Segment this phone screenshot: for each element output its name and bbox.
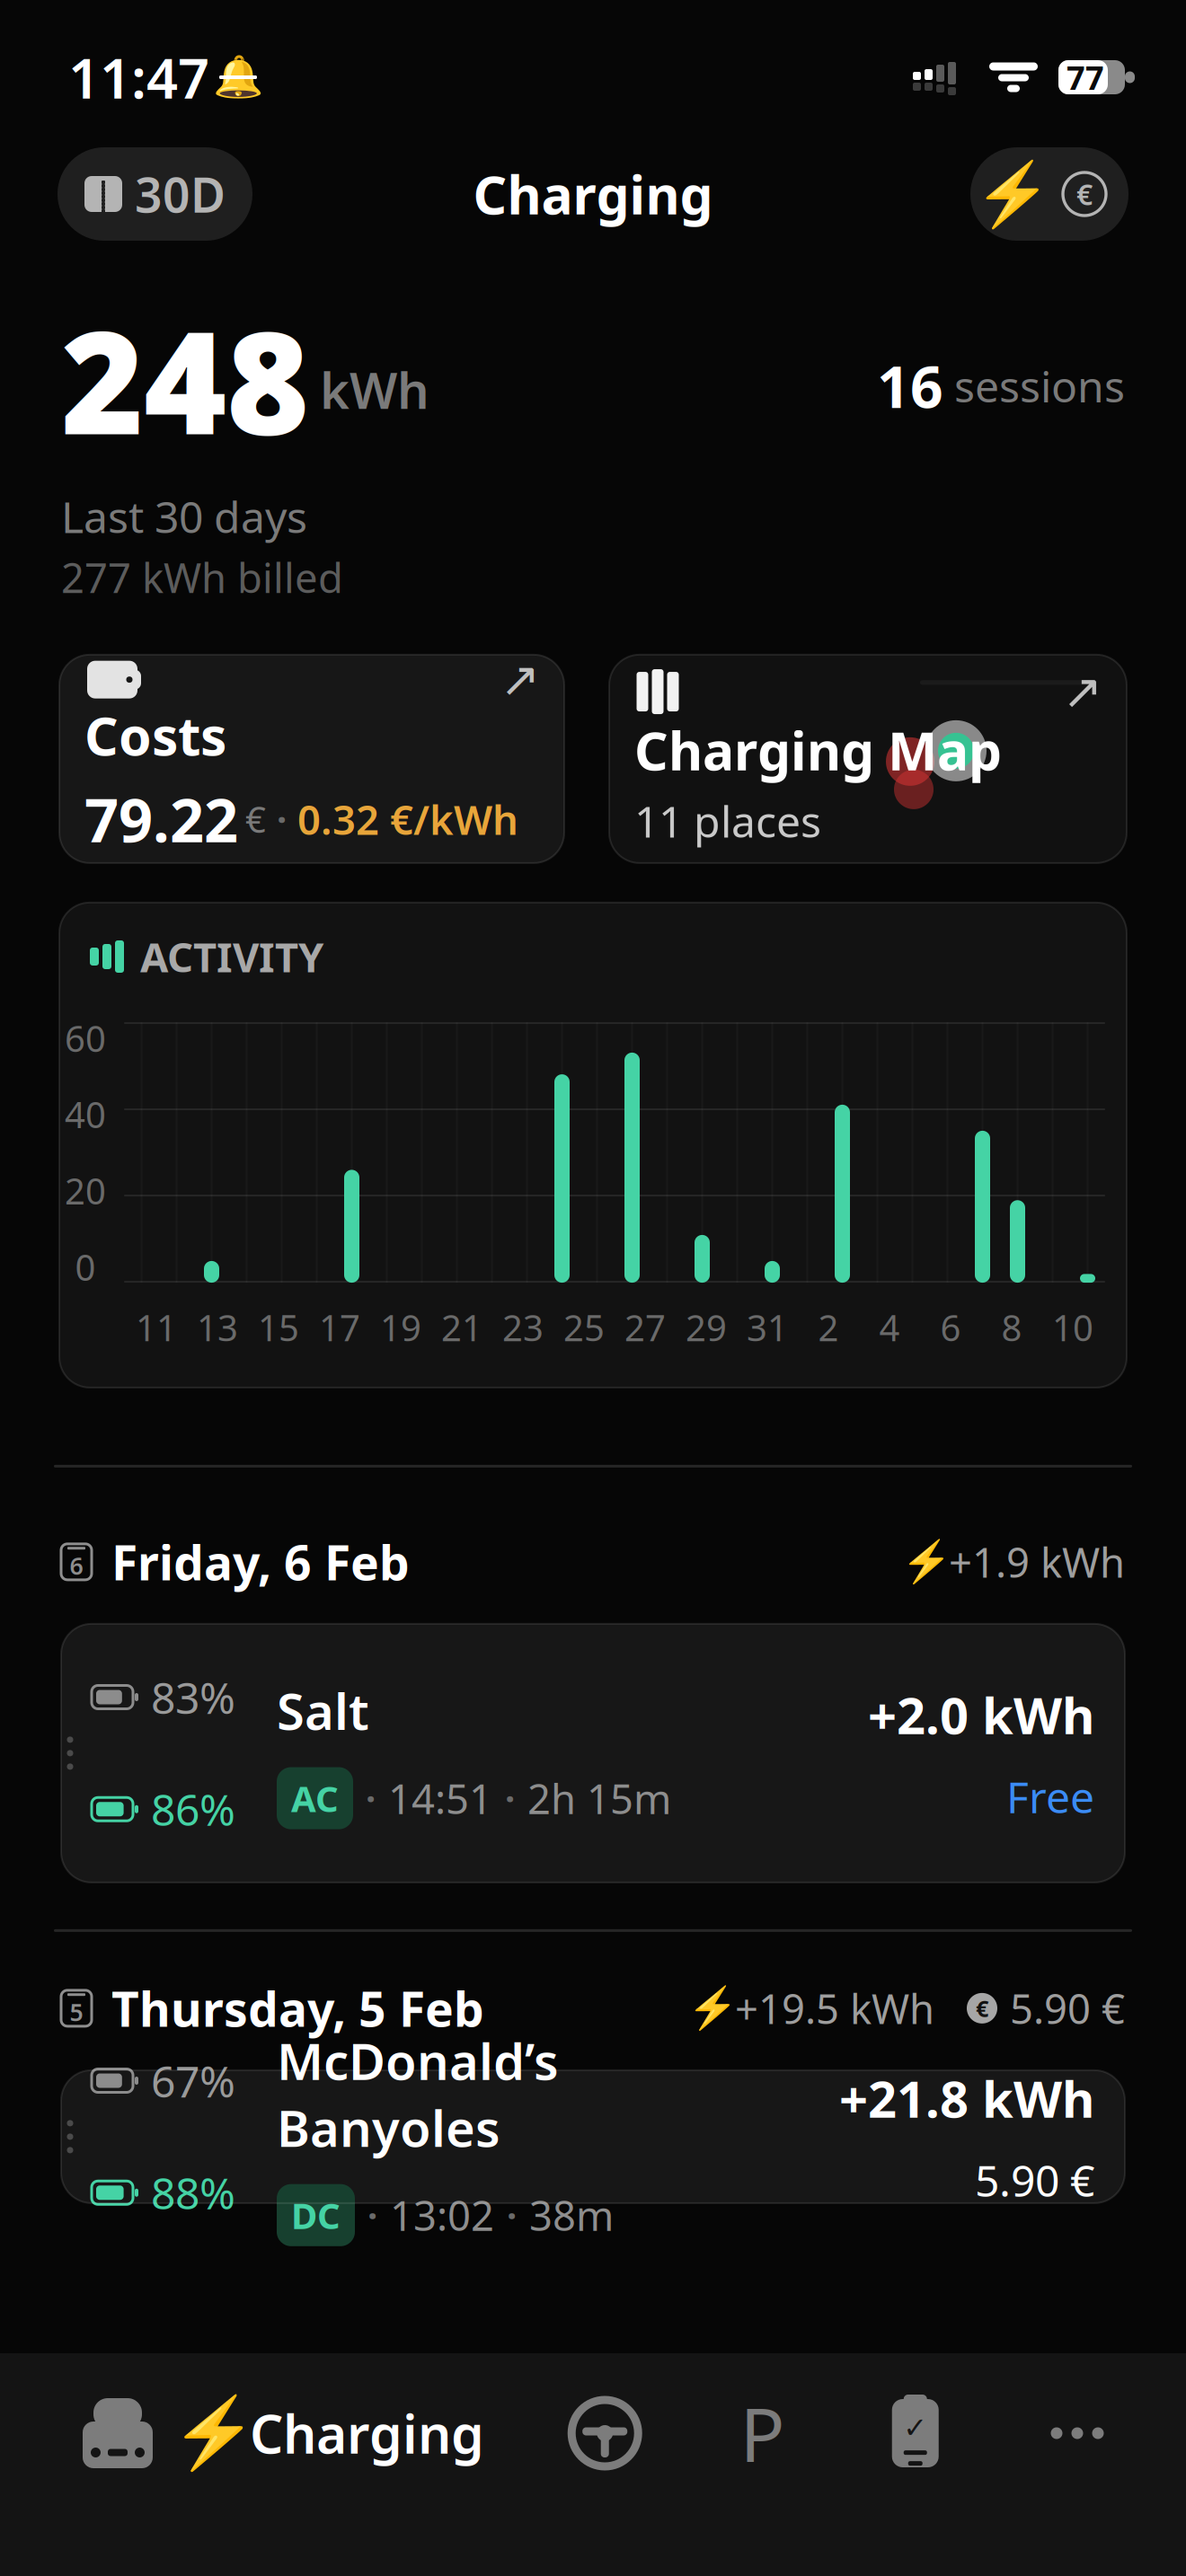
staticText: 20 — [65, 1167, 106, 1214]
staticText: 79.22 — [84, 779, 238, 859]
staticText: 5.90 € — [1010, 1981, 1125, 2035]
staticText: 11:47 — [68, 41, 209, 114]
staticText: McDonald’s Banyoles — [277, 2027, 559, 2161]
staticText: 30D — [135, 162, 226, 226]
button[interactable]: Car — [50, 2384, 185, 2483]
staticText: 🔔 — [213, 54, 263, 101]
button[interactable]: ↗ — [609, 655, 1127, 863]
staticText: 17 — [319, 1303, 360, 1351]
staticText: € — [245, 795, 266, 843]
staticText: Salt — [277, 1677, 369, 1744]
staticText: 13:02 — [390, 2188, 494, 2242]
staticText: · — [367, 2191, 377, 2239]
staticText: 25 — [563, 1303, 605, 1351]
staticText: 86% — [151, 1781, 235, 1838]
staticText: Charging — [473, 159, 713, 229]
staticText: ↗ — [500, 652, 540, 707]
button[interactable]: Drives — [546, 2384, 663, 2483]
staticText: 248 — [61, 286, 309, 473]
staticText: 11 — [136, 1303, 177, 1351]
staticText: ↗ — [1062, 664, 1103, 719]
staticText: 15 — [258, 1303, 299, 1351]
button[interactable]: ↗ — [59, 655, 564, 863]
staticText: 88% — [151, 2164, 235, 2221]
staticText: 0 — [75, 1243, 96, 1291]
staticText: +1.9 kWh — [949, 1535, 1125, 1589]
staticText: +21.8 kWh — [839, 2065, 1094, 2132]
staticText: 21 — [441, 1303, 482, 1351]
staticText: 16 — [877, 348, 943, 424]
staticText: +2.0 kWh — [868, 1681, 1094, 1748]
button[interactable]: 67% — [61, 2070, 1125, 2203]
staticText: 13 — [197, 1303, 238, 1351]
staticText: ⚡ — [902, 1539, 952, 1585]
staticText: · — [505, 1774, 515, 1822]
staticText: 14:51 — [388, 1771, 492, 1825]
staticText: 10 — [1052, 1303, 1093, 1351]
staticText: DC — [291, 2191, 341, 2239]
staticText: Costs — [84, 700, 226, 770]
staticText: 60 — [65, 1014, 106, 1062]
staticText: Friday, 6 Feb — [111, 1530, 410, 1594]
staticText: Free — [1006, 1768, 1094, 1825]
staticText: · — [507, 2191, 517, 2239]
staticText: 29 — [686, 1303, 727, 1351]
staticText: 2h 15m — [527, 1771, 671, 1825]
staticText: Thursday, 5 Feb — [111, 1976, 484, 2040]
staticText: ⚡ — [688, 1985, 738, 2032]
staticText: 0.32 €/kWh — [297, 792, 518, 846]
staticText: € — [976, 1993, 988, 2023]
staticText: Charging — [250, 2398, 484, 2468]
staticText: kWh — [320, 356, 429, 423]
staticText: 27 — [624, 1303, 666, 1351]
staticText: 23 — [502, 1303, 544, 1351]
staticText: · — [366, 1774, 376, 1822]
button[interactable]: Parking — [713, 2384, 812, 2483]
button[interactable]: More — [1019, 2384, 1136, 2483]
staticText: 6 — [940, 1303, 961, 1351]
staticText: · — [277, 795, 287, 843]
staticText: ⚡ — [974, 158, 1051, 230]
button[interactable]: Energy — [978, 147, 1048, 241]
staticText: sessions — [954, 357, 1125, 414]
button[interactable]: 30D — [58, 147, 252, 241]
staticText: Last 30 days — [61, 488, 307, 545]
staticText: 19 — [380, 1303, 421, 1351]
staticText: ⚡ — [171, 2393, 257, 2473]
button[interactable]: 83% — [61, 1624, 1125, 1883]
staticText: ACTIVITY — [140, 930, 323, 984]
button[interactable]: ⚡ — [185, 2384, 497, 2483]
staticText: +19.5 kWh — [735, 1981, 934, 2035]
staticText: 2 — [818, 1303, 839, 1351]
staticText: P — [740, 2384, 785, 2482]
staticText: Charging Map — [634, 715, 1002, 785]
staticText: € — [1076, 175, 1093, 213]
staticText: 6 — [70, 1550, 83, 1581]
staticText: 11 places — [634, 792, 821, 849]
staticText: 83% — [151, 1668, 235, 1726]
staticText: 77 — [1067, 56, 1104, 99]
staticText: 5 — [70, 1996, 83, 2028]
staticText: ✓ — [903, 2411, 927, 2444]
button[interactable]: Reports — [861, 2384, 969, 2483]
staticText: AC — [291, 1774, 339, 1822]
staticText: 5.90 € — [975, 2151, 1094, 2209]
staticText: 38m — [529, 2188, 614, 2242]
staticText: 67% — [151, 2052, 235, 2109]
staticText: 40 — [65, 1090, 106, 1138]
button[interactable]: Costs — [1048, 147, 1121, 241]
staticText: 4 — [879, 1303, 900, 1351]
staticText: 277 kWh billed — [61, 550, 343, 604]
staticText: 8 — [1001, 1303, 1022, 1351]
staticText: 31 — [747, 1303, 788, 1351]
